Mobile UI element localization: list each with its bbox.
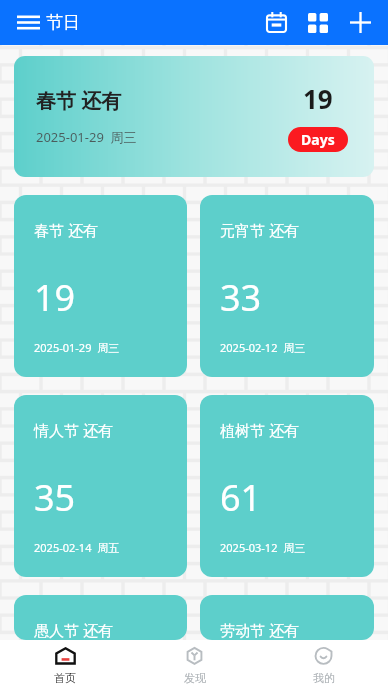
- staticText: 2025-02-12 周三: [220, 340, 306, 355]
- button[interactable]: 情人节 还有: [14, 395, 187, 577]
- staticText: 19: [34, 273, 76, 322]
- staticText: 元宵节 还有: [220, 220, 299, 240]
- staticText: 2025-01-29 周三: [36, 128, 137, 146]
- staticText: 愚人节 还有: [34, 620, 113, 640]
- button[interactable]: 我的: [259, 641, 388, 690]
- button[interactable]: Menu: [0, 7, 46, 38]
- button[interactable]: 发现: [130, 641, 259, 690]
- staticText: Days: [301, 130, 335, 149]
- button[interactable]: Calendar: [256, 2, 297, 43]
- button[interactable]: 劳动节 还有: [200, 595, 374, 640]
- staticText: 35: [34, 473, 76, 522]
- button[interactable]: Grid view: [297, 2, 339, 44]
- button[interactable]: 愚人节 还有: [14, 595, 187, 640]
- staticText: 61: [220, 473, 262, 522]
- staticText: 首页: [54, 671, 76, 685]
- staticText: 2025-01-29 周三: [34, 340, 120, 355]
- button[interactable]: 植树节 还有: [200, 395, 374, 577]
- staticText: 节日: [46, 12, 80, 33]
- button[interactable]: Add: [339, 2, 388, 43]
- button[interactable]: 春节 还有: [14, 195, 187, 377]
- staticText: 2025-02-14 周五: [34, 540, 120, 555]
- button[interactable]: 春节 还有: [14, 56, 374, 177]
- staticText: 春节 还有: [34, 220, 98, 240]
- staticText: 我的: [313, 671, 335, 685]
- button[interactable]: 元宵节 还有: [200, 195, 374, 377]
- staticText: 2025-03-12 周三: [220, 540, 306, 555]
- staticText: 33: [220, 273, 262, 322]
- staticText: 19: [303, 81, 333, 116]
- button[interactable]: 首页: [0, 641, 130, 690]
- staticText: 情人节 还有: [34, 420, 113, 440]
- staticText: 发现: [184, 671, 206, 685]
- staticText: 劳动节 还有: [220, 620, 299, 640]
- staticText: 春节 还有: [36, 87, 122, 114]
- staticText: 植树节 还有: [220, 420, 299, 440]
